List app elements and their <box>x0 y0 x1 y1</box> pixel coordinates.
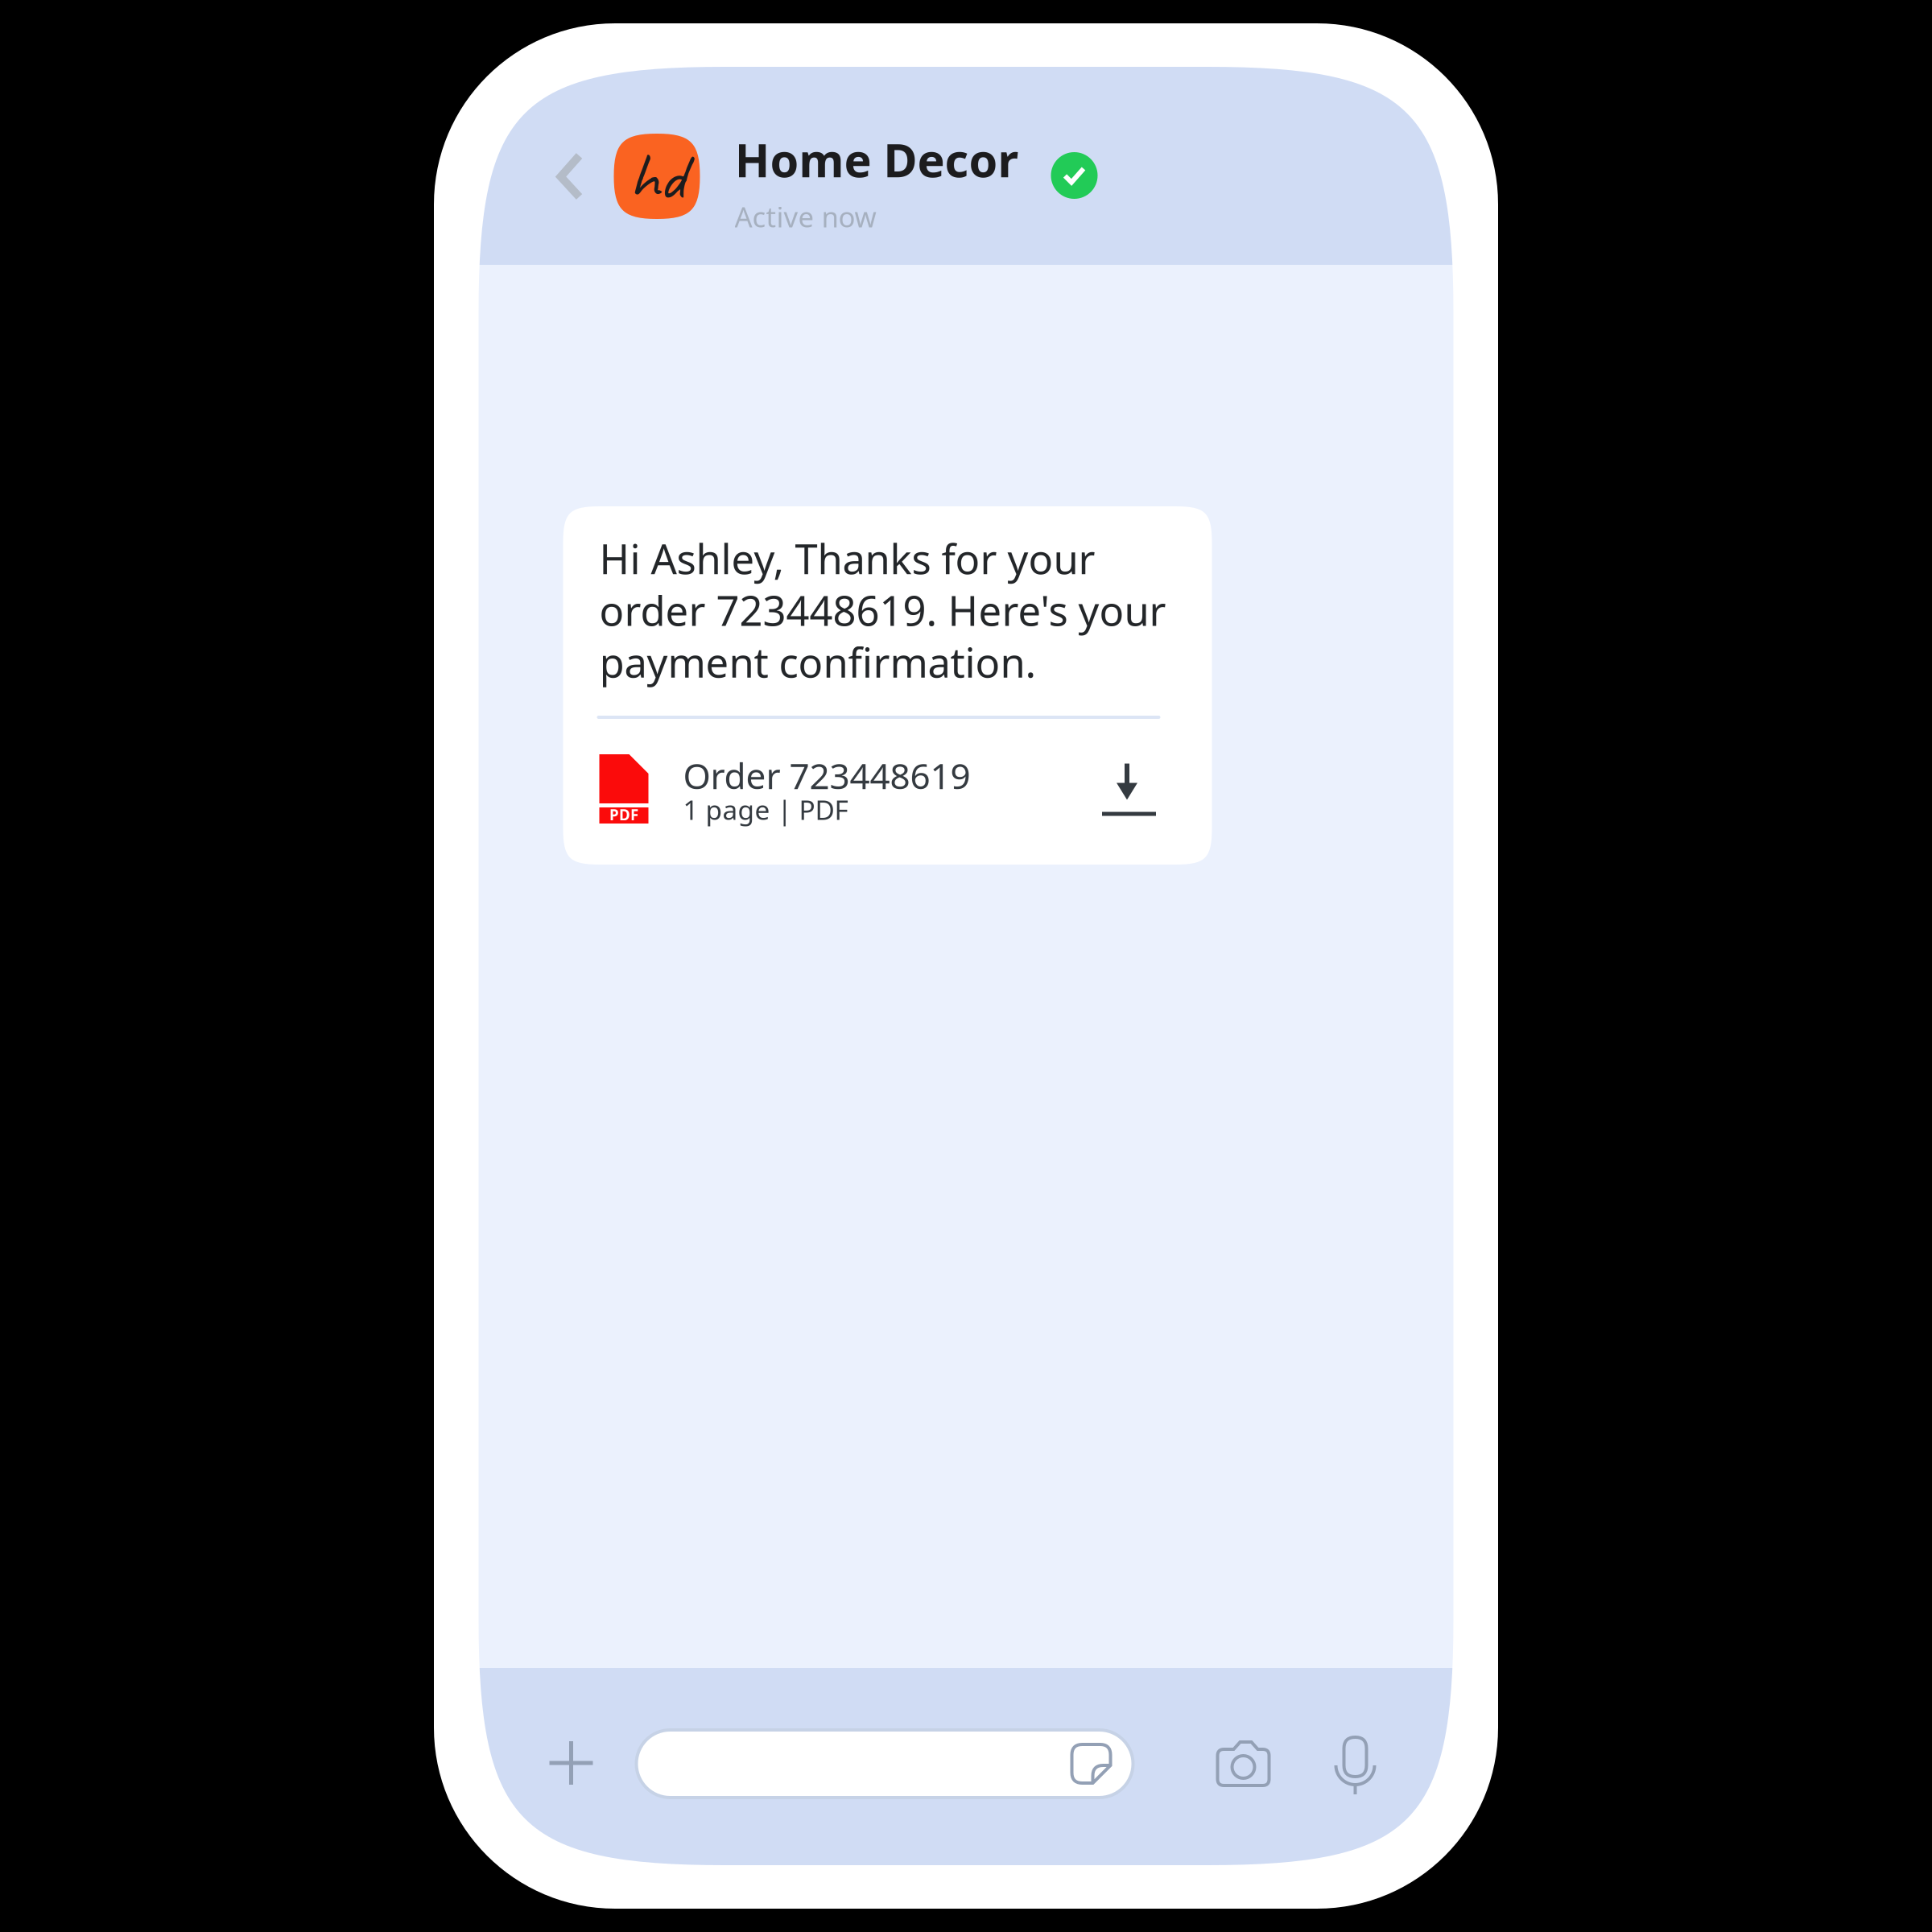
staticText: Active now <box>735 198 876 235</box>
button[interactable]: Back <box>525 120 614 233</box>
button[interactable]: Download PDF <box>1085 745 1173 834</box>
button[interactable]: Add attachment <box>527 1719 615 1807</box>
staticText: hd <box>629 134 685 218</box>
button[interactable]: Home Decor <box>735 129 1113 229</box>
staticText: 1 page | PDF <box>683 792 848 827</box>
staticText: Hi Ashley, Thanks for your <box>599 531 1095 585</box>
staticText: order 723448619. Here's your <box>599 583 1166 637</box>
button[interactable]: Home Decor profile <box>614 134 700 219</box>
staticText: Home Decor <box>735 129 1019 190</box>
button[interactable]: Camera <box>1199 1719 1288 1808</box>
staticText: Order 723448619 <box>683 752 970 799</box>
button[interactable]: Voice message <box>1311 1721 1399 1810</box>
staticText: PDF <box>609 805 638 825</box>
staticText: payment confirmation. <box>599 635 1036 689</box>
button[interactable]: Message <box>636 1730 1133 1798</box>
